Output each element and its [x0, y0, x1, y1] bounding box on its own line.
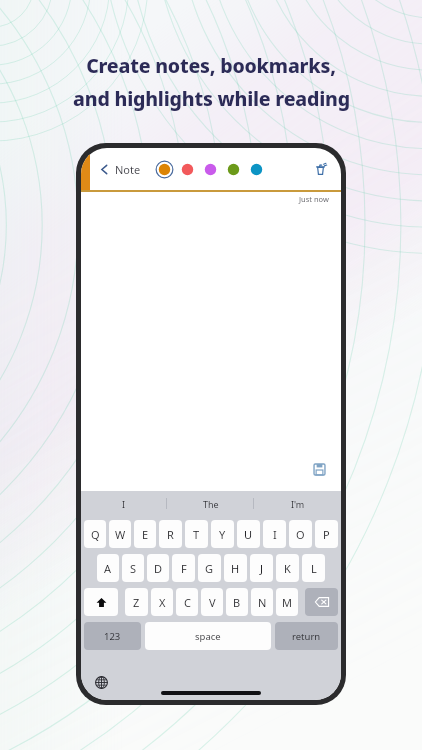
staticText: K [284, 561, 291, 576]
staticText: C [184, 595, 191, 610]
button[interactable]: B [226, 588, 248, 616]
button[interactable]: M [276, 588, 298, 616]
button[interactable]: Y [211, 520, 234, 548]
staticText: G [205, 561, 214, 576]
button[interactable]: Change keyboard language [91, 672, 111, 692]
button[interactable]: T [185, 520, 208, 548]
button[interactable]: A [97, 554, 119, 582]
staticText: B [233, 595, 241, 610]
button[interactable]: Q [84, 520, 106, 548]
button[interactable]: Highlight colour 4 [224, 160, 243, 179]
button[interactable]: F [172, 554, 195, 582]
button[interactable]: U [237, 520, 260, 548]
button[interactable]: I [81, 491, 167, 516]
button[interactable]: G [198, 554, 221, 582]
staticText: Q [91, 527, 100, 542]
button[interactable]: O [289, 520, 312, 548]
staticText: I [122, 498, 126, 510]
button[interactable]: I'm [254, 491, 341, 516]
button[interactable]: J [250, 554, 273, 582]
staticText: Y [219, 527, 226, 542]
button[interactable]: Delete note [309, 158, 331, 180]
staticText: E [142, 527, 149, 542]
button[interactable]: space [145, 622, 271, 650]
staticText: D [154, 561, 163, 576]
staticText: A [104, 561, 112, 576]
staticText: W [115, 527, 126, 542]
staticText: M [282, 595, 292, 610]
button[interactable]: return [275, 622, 338, 650]
staticText: P [323, 527, 330, 542]
button[interactable]: I [263, 520, 286, 548]
staticText: Just now [299, 194, 329, 204]
button[interactable]: Note [97, 158, 143, 181]
button[interactable]: H [224, 554, 247, 582]
button[interactable]: N [251, 588, 273, 616]
staticText: space [195, 630, 221, 643]
button[interactable]: K [276, 554, 299, 582]
staticText: I'm [291, 498, 305, 510]
button[interactable]: C [176, 588, 198, 616]
staticText: Note [115, 162, 141, 177]
staticText: 123 [104, 630, 121, 643]
button[interactable]: Highlight colour 5 [247, 160, 266, 179]
button[interactable]: W [109, 520, 131, 548]
button[interactable]: S [122, 554, 144, 582]
staticText: and highlights while reading [73, 85, 350, 112]
button[interactable]: Highlight colour 2 [178, 160, 197, 179]
staticText: S [130, 561, 137, 576]
button[interactable]: E [134, 520, 156, 548]
staticText: H [231, 561, 240, 576]
staticText: Create notes, bookmarks, [86, 52, 336, 79]
staticText: N [258, 595, 267, 610]
staticText: O [296, 527, 305, 542]
button[interactable]: X [151, 588, 173, 616]
staticText: return [292, 630, 321, 643]
staticText: J [260, 561, 264, 576]
staticText: U [244, 527, 253, 542]
staticText: Z [133, 595, 140, 610]
staticText: L [311, 561, 317, 576]
staticText: I [273, 527, 277, 542]
button[interactable]: D [147, 554, 169, 582]
button[interactable]: Backspace [305, 588, 338, 616]
button[interactable]: Shift [84, 588, 118, 616]
staticText: The [203, 498, 219, 510]
staticText: X [159, 595, 166, 610]
staticText: F [181, 561, 187, 576]
staticText: R [167, 527, 174, 542]
button[interactable]: Z [125, 588, 148, 616]
button[interactable]: L [302, 554, 325, 582]
button[interactable]: V [201, 588, 223, 616]
staticText: V [209, 595, 216, 610]
button[interactable]: Save note [309, 459, 329, 479]
button[interactable]: P [315, 520, 338, 548]
staticText: T [193, 527, 200, 542]
button[interactable]: 123 [84, 622, 141, 650]
button[interactable]: The [167, 491, 254, 516]
button[interactable]: Highlight colour 3 [201, 160, 220, 179]
button[interactable]: Highlight colour 1 [155, 160, 174, 179]
button[interactable]: R [159, 520, 182, 548]
